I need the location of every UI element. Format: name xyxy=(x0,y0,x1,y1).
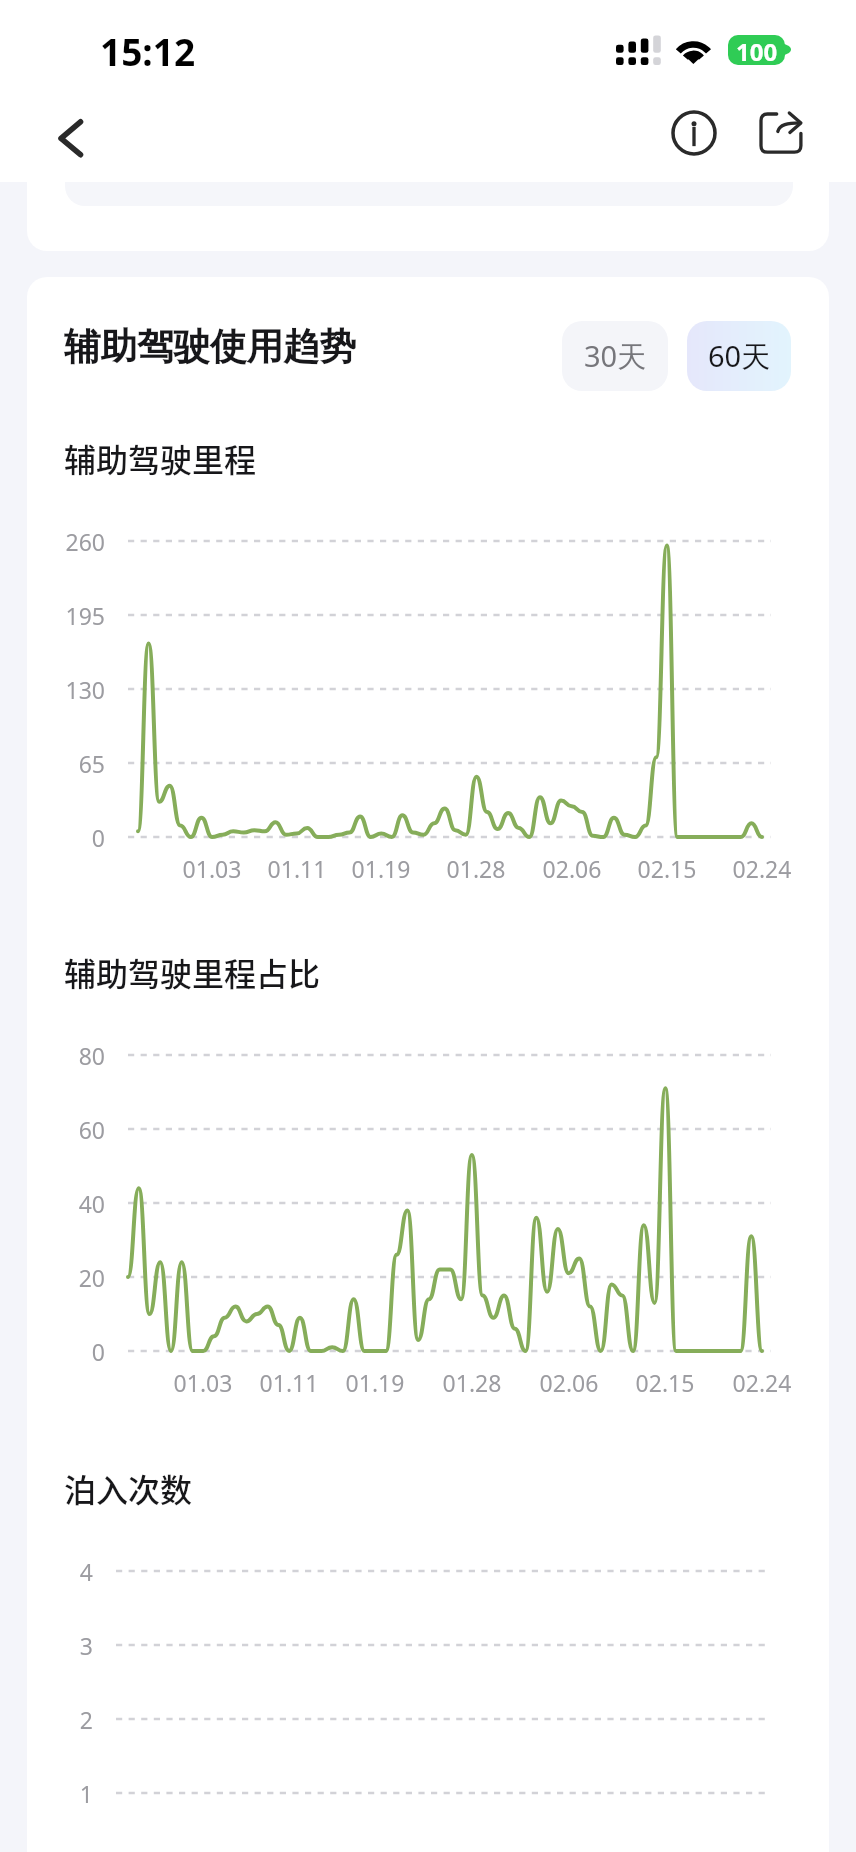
staticText: 1 xyxy=(0,1778,93,1809)
button[interactable]: Back xyxy=(44,104,104,164)
staticText: 130 xyxy=(5,674,105,705)
staticText: 60 xyxy=(5,1114,105,1145)
staticText: 泊入次数 xyxy=(64,1465,193,1511)
staticText: 02.15 xyxy=(615,1367,715,1398)
staticText: 2 xyxy=(0,1704,93,1735)
staticText: 01.03 xyxy=(162,853,262,884)
staticText: 01.03 xyxy=(153,1367,253,1398)
staticText: 辅助驾驶使用趋势 xyxy=(64,324,356,370)
staticText: 01.19 xyxy=(331,853,431,884)
staticText: 260 xyxy=(5,526,105,557)
staticText: 40 xyxy=(5,1188,105,1219)
staticText: 15:12 xyxy=(100,26,196,76)
staticText: 0 xyxy=(5,1336,105,1367)
staticText: 65 xyxy=(5,748,105,779)
staticText: 01.28 xyxy=(426,853,526,884)
button[interactable]: 30天 xyxy=(562,321,668,391)
staticText: 100 xyxy=(736,35,778,65)
staticText: 01.28 xyxy=(422,1367,522,1398)
staticText: 01.11 xyxy=(247,853,347,884)
staticText: 4 xyxy=(0,1556,93,1587)
staticText: 02.06 xyxy=(522,853,622,884)
staticText: 60天 xyxy=(708,336,771,376)
staticText: 80 xyxy=(5,1040,105,1071)
button[interactable]: Information xyxy=(665,104,723,162)
button[interactable]: Share xyxy=(752,104,810,162)
staticText: 20 xyxy=(5,1262,105,1293)
staticText: 02.06 xyxy=(519,1367,619,1398)
staticText: 195 xyxy=(5,600,105,631)
staticText: 02.24 xyxy=(712,853,812,884)
staticText: 02.24 xyxy=(712,1367,812,1398)
staticText: 01.19 xyxy=(325,1367,425,1398)
button[interactable]: 60天 xyxy=(687,321,791,391)
staticText: 02.15 xyxy=(617,853,717,884)
staticText: 30天 xyxy=(584,336,647,376)
staticText: 辅助驾驶里程占比 xyxy=(64,949,321,995)
staticText: 0 xyxy=(5,822,105,853)
staticText: 01.11 xyxy=(239,1367,339,1398)
staticText: 辅助驾驶里程 xyxy=(64,435,257,481)
staticText: 3 xyxy=(0,1630,93,1661)
